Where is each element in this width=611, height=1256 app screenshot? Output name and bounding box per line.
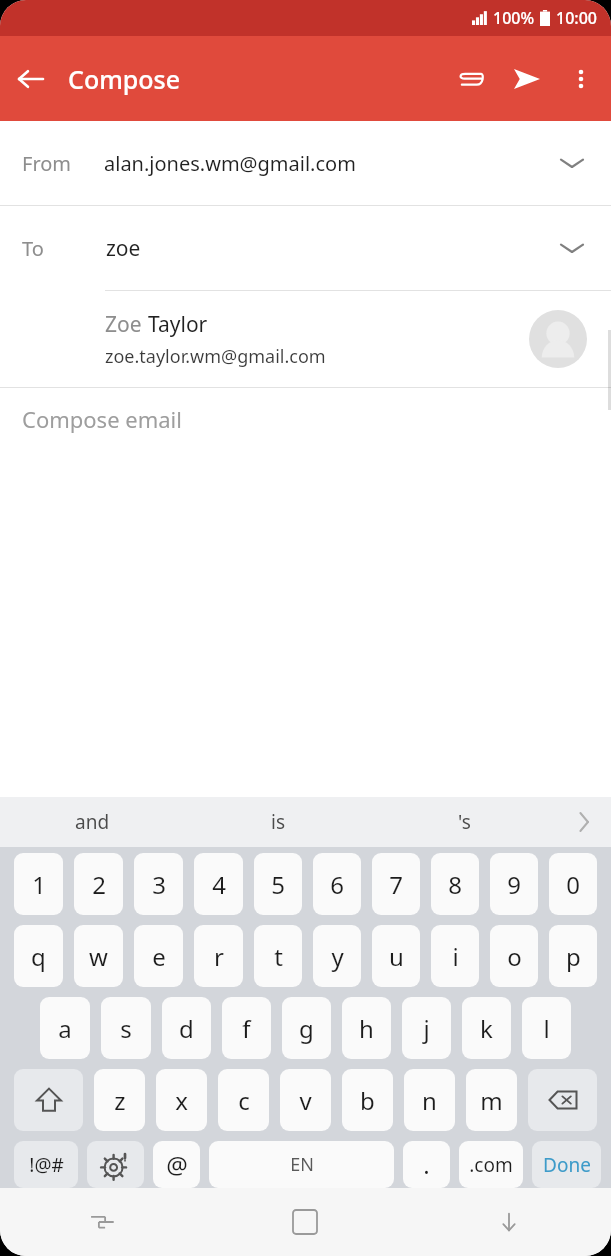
button[interactable]: l — [522, 997, 571, 1059]
button[interactable]: b — [342, 1069, 393, 1131]
button[interactable]: Shift — [14, 1069, 83, 1131]
button[interactable]: j — [402, 997, 451, 1059]
staticText: 10:00 — [556, 7, 597, 29]
staticText: 100% — [493, 7, 535, 29]
button[interactable]: o — [490, 925, 538, 987]
button[interactable]: 8 — [431, 853, 479, 915]
button[interactable]: h — [342, 997, 391, 1059]
staticText: u — [389, 940, 404, 973]
button[interactable]: EN — [209, 1141, 394, 1188]
staticText: o — [507, 940, 522, 973]
staticText: b — [360, 1084, 375, 1117]
button[interactable]: v — [280, 1069, 331, 1131]
button[interactable]: p — [549, 925, 597, 987]
staticText: k — [480, 1012, 493, 1045]
staticText: 3 — [152, 868, 166, 901]
button[interactable]: y — [313, 925, 361, 987]
staticText: Taylor — [148, 310, 208, 339]
button[interactable]: .com — [459, 1141, 523, 1188]
staticText: is — [271, 809, 286, 835]
button[interactable]: Backspace — [528, 1069, 597, 1131]
button[interactable]: @ — [153, 1141, 200, 1188]
button[interactable]: f — [222, 997, 271, 1059]
button[interactable]: Attach file — [443, 51, 499, 107]
button[interactable]: To — [0, 206, 611, 290]
button[interactable]: g — [282, 997, 331, 1059]
button[interactable]: More suggestions — [557, 797, 611, 847]
staticText: v — [299, 1084, 312, 1117]
staticText: 6 — [330, 868, 344, 901]
button[interactable]: 9 — [490, 853, 538, 915]
button[interactable]: i — [431, 925, 479, 987]
staticText: j — [423, 1012, 430, 1045]
button[interactable]: d — [162, 997, 211, 1059]
staticText: .com — [469, 1152, 513, 1178]
staticText: 2 — [92, 868, 106, 901]
button[interactable]: Hide keyboard — [407, 1188, 611, 1256]
button[interactable]: 5 — [254, 853, 302, 915]
staticText: s — [120, 1012, 132, 1045]
button[interactable]: !@# — [14, 1141, 78, 1188]
button[interactable]: w — [74, 925, 123, 987]
button[interactable]: z — [94, 1069, 145, 1131]
button[interactable]: Settings and voice input — [87, 1141, 144, 1188]
staticText: m — [480, 1084, 503, 1117]
button[interactable]: 1 — [14, 853, 63, 915]
button[interactable]: 4 — [194, 853, 243, 915]
staticText: @ — [166, 1148, 188, 1181]
button[interactable]: Compose email — [0, 388, 611, 797]
button[interactable]: t — [254, 925, 302, 987]
staticText: y — [331, 940, 344, 973]
button[interactable]: n — [404, 1069, 455, 1131]
button[interactable]: e — [134, 925, 183, 987]
button[interactable]: 7 — [372, 853, 420, 915]
button[interactable]: a — [40, 997, 90, 1059]
staticText: !@# — [29, 1152, 64, 1178]
staticText: 0 — [566, 868, 580, 901]
button[interactable]: Send — [499, 51, 555, 107]
staticText: n — [422, 1084, 437, 1117]
button[interactable]: r — [194, 925, 243, 987]
staticText: h — [359, 1012, 374, 1045]
staticText: Compose email — [22, 404, 182, 434]
staticText: 9 — [507, 868, 521, 901]
button[interactable]: Recents — [0, 1188, 203, 1256]
button[interactable]: and — [0, 797, 185, 847]
staticText: i — [452, 940, 459, 973]
staticText: p — [566, 940, 581, 973]
button[interactable]: x — [156, 1069, 207, 1131]
button[interactable]: From — [0, 121, 611, 205]
button[interactable]: 3 — [134, 853, 183, 915]
staticText: r — [214, 940, 224, 973]
button[interactable]: . — [403, 1141, 450, 1188]
staticText: . — [423, 1148, 430, 1181]
button[interactable]: More options — [555, 53, 607, 105]
button[interactable]: Back — [0, 49, 60, 109]
staticText: q — [31, 940, 46, 973]
button[interactable]: 0 — [549, 853, 597, 915]
staticText: 7 — [389, 868, 403, 901]
staticText: 8 — [448, 868, 462, 901]
button[interactable]: Zoe — [0, 291, 611, 387]
button[interactable]: q — [14, 925, 63, 987]
button[interactable]: m — [466, 1069, 517, 1131]
button[interactable]: Done — [532, 1141, 601, 1188]
staticText: d — [179, 1012, 194, 1045]
staticText: and — [75, 809, 110, 835]
button[interactable]: is — [185, 797, 371, 847]
button[interactable]: 's — [371, 797, 557, 847]
button[interactable]: Home — [203, 1188, 407, 1256]
button[interactable]: c — [218, 1069, 269, 1131]
staticText: EN — [290, 1152, 314, 1177]
button[interactable]: s — [101, 997, 151, 1059]
staticText: f — [242, 1012, 251, 1045]
button[interactable]: k — [462, 997, 511, 1059]
staticText: l — [543, 1012, 550, 1045]
button[interactable]: u — [372, 925, 420, 987]
staticText: t — [274, 940, 283, 973]
staticText: w — [89, 940, 108, 973]
button[interactable]: 2 — [74, 853, 123, 915]
staticText: e — [152, 940, 166, 973]
button[interactable]: 6 — [313, 853, 361, 915]
staticText: 1 — [32, 868, 46, 901]
